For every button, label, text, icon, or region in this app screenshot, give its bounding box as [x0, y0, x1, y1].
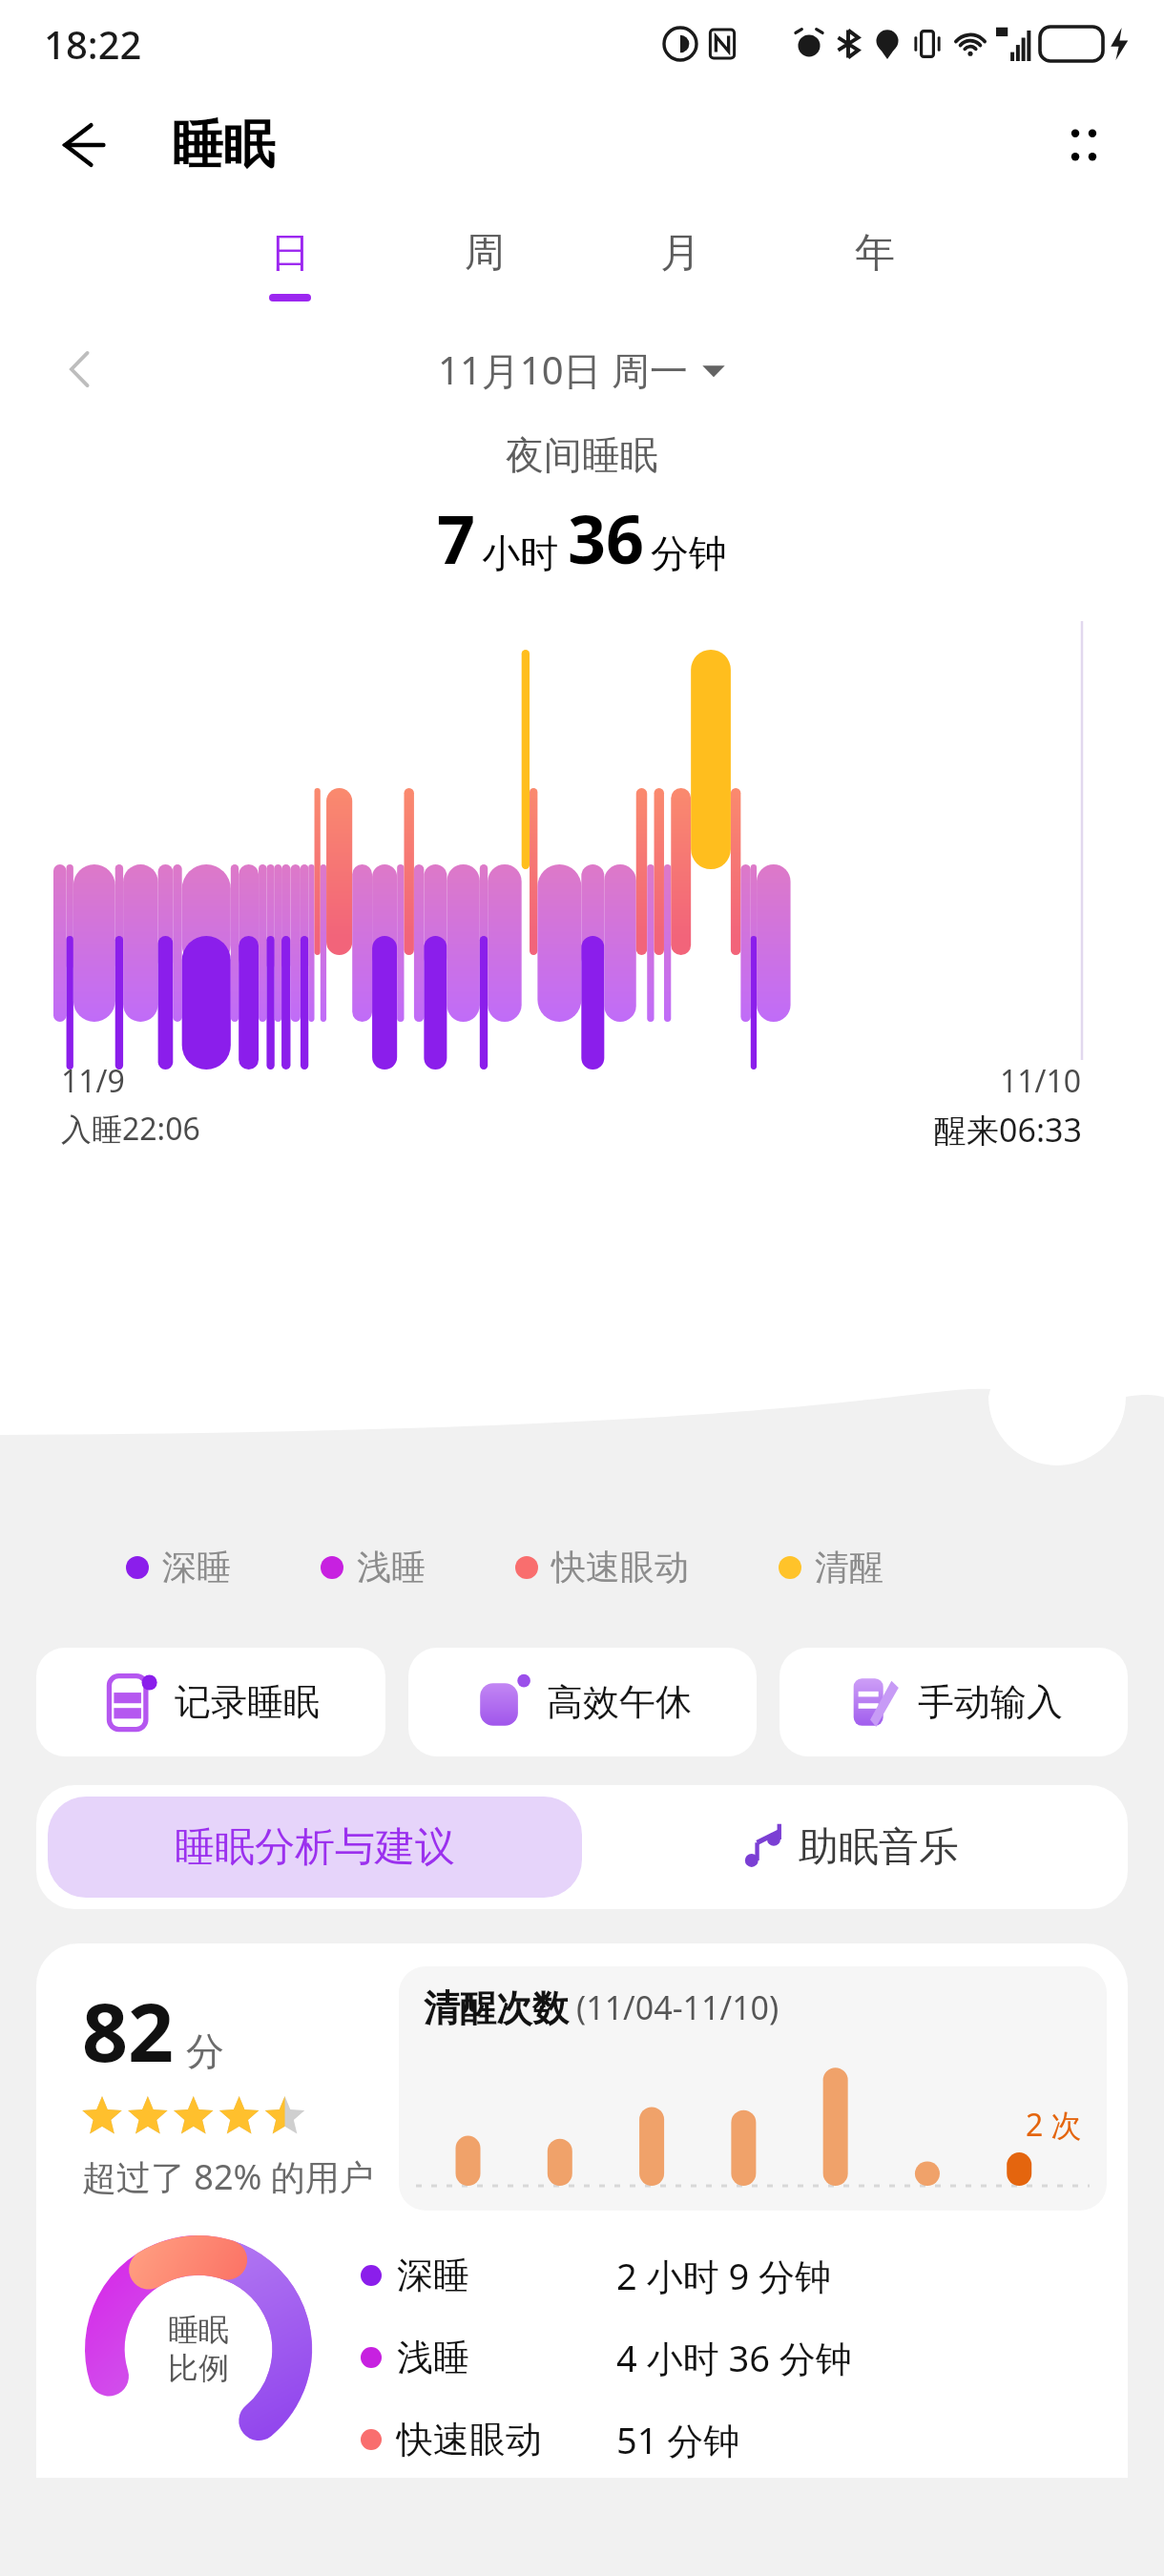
staticText: 睡眠 — [168, 2311, 229, 2349]
staticText: 18:22 — [44, 18, 142, 70]
staticText: 年 — [855, 228, 895, 279]
button[interactable]: 周 — [439, 222, 530, 307]
button[interactable]: 年 — [829, 222, 920, 307]
staticText: 分钟 — [651, 530, 727, 577]
staticText: 快速眼动 — [551, 1546, 689, 1589]
staticText: 超过了 82% 的用户 — [82, 2153, 374, 2200]
button[interactable]: 月 — [634, 222, 725, 307]
button[interactable]: 助眠音乐 — [582, 1797, 1116, 1898]
staticText: 比例 — [168, 2349, 229, 2387]
staticText: 分 — [186, 2027, 224, 2075]
staticText: 51 分钟 — [616, 2415, 740, 2464]
staticText: 浅睡 — [357, 1546, 426, 1589]
staticText: 11/9 — [61, 1060, 125, 1102]
button[interactable]: Previous day — [50, 339, 111, 400]
staticText: 2 小时 9 分钟 — [616, 2251, 832, 2300]
staticText: 夜间睡眠 — [506, 431, 658, 479]
staticText: 睡眠分析与建议 — [175, 1822, 455, 1873]
button[interactable]: 日 — [244, 222, 335, 307]
staticText: 深睡 — [397, 2253, 469, 2298]
button[interactable]: 记录睡眠 — [36, 1648, 385, 1756]
staticText: (11/04-11/10) — [576, 1985, 779, 2029]
staticText: 周 — [465, 228, 505, 279]
staticText: 助眠音乐 — [799, 1822, 959, 1873]
button[interactable]: 11月10日 周一 — [438, 343, 726, 396]
button[interactable]: 睡眠分析与建议 — [48, 1797, 582, 1898]
staticText: 浅睡 — [397, 2335, 469, 2380]
button[interactable]: 高效午休 — [408, 1648, 757, 1756]
staticText: 入睡22:06 — [61, 1108, 200, 1150]
staticText: 高效午休 — [547, 1679, 692, 1725]
button[interactable]: 手动输入 — [779, 1648, 1128, 1756]
staticText: 记录睡眠 — [175, 1679, 320, 1725]
staticText: 7 — [437, 492, 476, 583]
staticText: 深睡 — [162, 1546, 231, 1589]
staticText: 11/10 — [1000, 1060, 1082, 1102]
staticText: 睡眠 — [172, 113, 275, 177]
staticText: 清醒 — [815, 1546, 883, 1589]
staticText: 4 小时 36 分钟 — [616, 2333, 852, 2382]
staticText: 日 — [270, 228, 310, 279]
button[interactable]: More options — [1046, 107, 1122, 183]
staticText: 手动输入 — [918, 1679, 1063, 1725]
button[interactable]: Back — [48, 112, 114, 178]
staticText: 小时 — [482, 530, 558, 577]
staticText: 月 — [660, 228, 700, 279]
staticText: 36 — [568, 492, 645, 583]
staticText: 11月10日 周一 — [438, 343, 688, 396]
staticText: 82 — [82, 1976, 175, 2085]
staticText: 醒来06:33 — [934, 1108, 1082, 1152]
staticText: 清醒次数 — [424, 1985, 569, 2031]
staticText: 2 次 — [1026, 2104, 1082, 2146]
staticText: 快速眼动 — [397, 2417, 542, 2462]
